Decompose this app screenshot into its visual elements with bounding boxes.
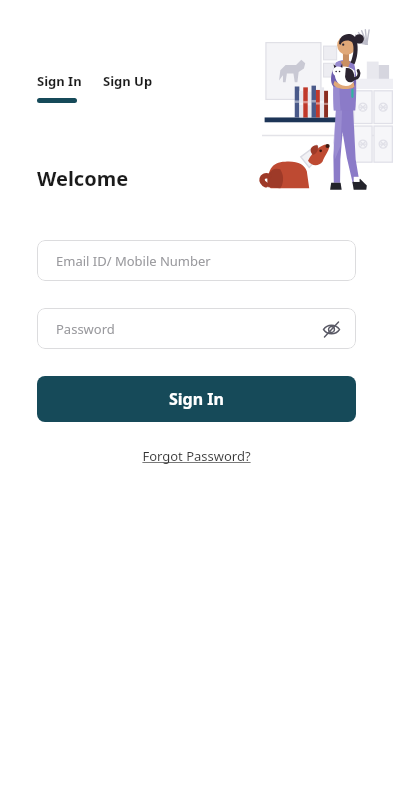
staticText: Email ID/ Mobile Number bbox=[56, 252, 211, 270]
staticText: Sign In bbox=[169, 388, 224, 410]
button[interactable]: Sign In bbox=[37, 376, 356, 422]
button[interactable]: Email ID/ Mobile Number bbox=[37, 240, 356, 281]
staticText: Password bbox=[56, 320, 115, 338]
button[interactable]: Password bbox=[37, 308, 356, 349]
staticText: Welcome bbox=[37, 165, 129, 192]
button[interactable]: Sign In bbox=[37, 72, 82, 103]
staticText: Sign In bbox=[37, 72, 82, 90]
button[interactable]: Sign Up bbox=[103, 72, 153, 90]
staticText: Forgot Password? bbox=[142, 447, 251, 465]
staticText: Sign Up bbox=[103, 72, 153, 90]
button[interactable]: Forgot Password? bbox=[138, 443, 255, 469]
button[interactable]: Show password bbox=[318, 316, 344, 342]
